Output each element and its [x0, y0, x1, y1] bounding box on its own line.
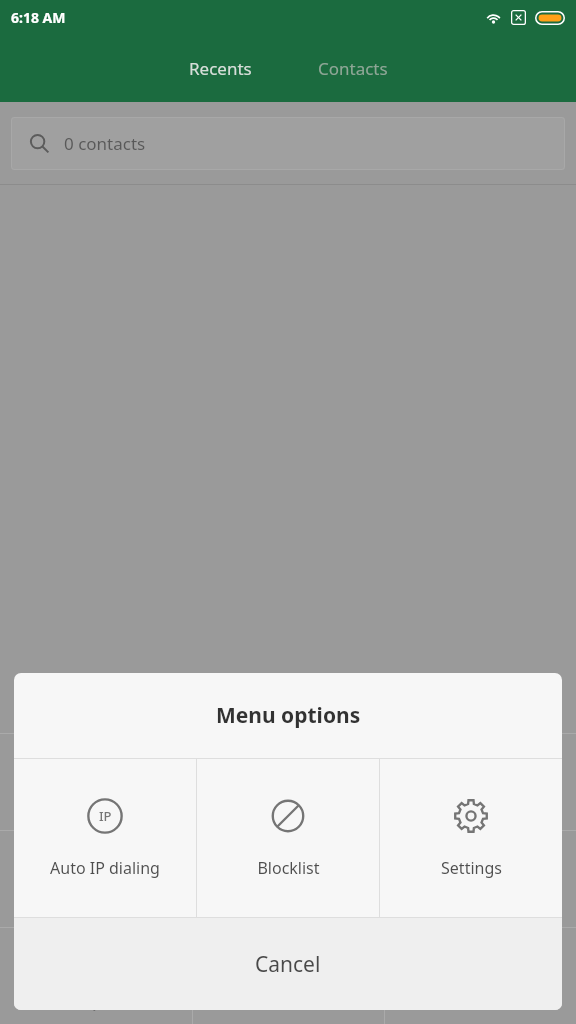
staticText: 8 [278, 940, 300, 992]
staticText: Auto IP dialing [50, 857, 160, 879]
staticText: Menu options [216, 701, 361, 730]
button[interactable]: Contacts [292, 43, 414, 94]
staticText: 0 contacts [64, 132, 146, 155]
button[interactable]: 9 [385, 928, 576, 1024]
staticText: 6:18 AM [11, 8, 66, 27]
staticText: TUV [276, 995, 301, 1013]
button[interactable]: 1 [0, 734, 192, 830]
other: Blocklist [269, 797, 307, 835]
staticText: Cancel [255, 950, 321, 979]
staticText: WXYZ [463, 995, 498, 1013]
staticText: DEF [469, 801, 493, 819]
staticText: 4 [85, 843, 107, 895]
button[interactable]: Cancel [14, 918, 562, 1010]
button[interactable]: Recents [163, 43, 278, 94]
other: Settings [452, 797, 490, 835]
staticText: IP [99, 807, 112, 825]
button[interactable]: 8 [193, 928, 384, 1024]
staticText: Settings [441, 857, 502, 879]
button[interactable]: 7 [0, 928, 192, 1024]
staticText: Blocklist [257, 857, 320, 879]
staticText: 2 [278, 746, 300, 798]
button[interactable]: 3 [385, 734, 576, 830]
staticText: 1 [85, 749, 107, 801]
staticText: PQRS [79, 995, 113, 1013]
staticText: 5 [278, 843, 300, 895]
staticText: 3 [470, 746, 492, 798]
button[interactable]: 5 [193, 831, 384, 927]
button[interactable]: Settings [380, 759, 562, 917]
button[interactable]: 0 contacts [11, 117, 565, 170]
button[interactable]: 2 [193, 734, 384, 830]
staticText: Recents [189, 57, 252, 80]
staticText: 6 [470, 843, 492, 895]
other: Auto IP dialing [86, 797, 124, 835]
button[interactable]: 4 [0, 831, 192, 927]
button[interactable]: Blocklist [197, 759, 379, 917]
button[interactable]: 6 [385, 831, 576, 927]
button[interactable]: Auto IP dialing [14, 759, 196, 917]
staticText: Contacts [318, 57, 388, 80]
staticText: ABC [276, 801, 301, 819]
